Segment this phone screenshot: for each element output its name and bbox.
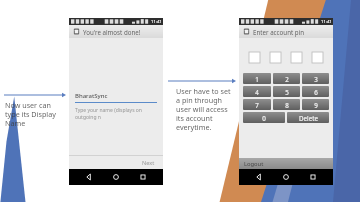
button[interactable]: 1 [243,73,271,84]
staticText: Type your name (displays on outgoing n [75,107,157,121]
staticText: Delete [299,114,318,122]
staticText: 3 [314,75,318,83]
button[interactable]: Back [252,170,266,184]
button[interactable]: 5 [273,86,300,97]
staticText: 7 [255,101,259,109]
button[interactable]: 6 [302,86,329,97]
button[interactable]: Recents [136,170,150,184]
button[interactable]: 3 [302,73,329,84]
button[interactable]: PIN digit [249,52,260,63]
staticText: 11:41 [151,19,162,25]
staticText: 8 [285,101,289,109]
staticText: 0 [262,114,266,122]
button[interactable]: 9 [302,99,329,110]
staticText: User have to set a pin through user will… [176,86,240,132]
staticText: BharatSync [75,92,108,100]
button[interactable]: 0 [243,112,285,123]
staticText: Now user can type its Display Name [5,100,67,128]
staticText: Logout [244,160,264,168]
button[interactable]: PIN digit [291,52,302,63]
staticText: Next [142,159,155,166]
button[interactable]: Recents [306,170,320,184]
button[interactable]: PIN digit [270,52,281,63]
staticText: 5 [285,88,289,96]
button[interactable]: 2 [273,73,300,84]
button[interactable]: Next [134,156,163,169]
button[interactable]: Logout [239,158,333,169]
staticText: 11:41 [321,19,332,25]
button[interactable]: 4 [243,86,271,97]
button[interactable]: Home [279,170,293,184]
staticText: Enter account pin [253,28,305,36]
staticText: 2 [285,75,289,83]
staticText: 1 [255,75,259,83]
button[interactable]: Back [82,170,96,184]
button[interactable]: 7 [243,99,271,110]
staticText: You're almost done! [83,28,141,36]
button[interactable]: PIN digit [312,52,323,63]
staticText: 6 [314,88,318,96]
button[interactable]: Delete [287,112,329,123]
button[interactable]: Home [109,170,123,184]
staticText: 4 [255,88,259,96]
staticText: 9 [314,101,318,109]
button[interactable]: 8 [273,99,300,110]
